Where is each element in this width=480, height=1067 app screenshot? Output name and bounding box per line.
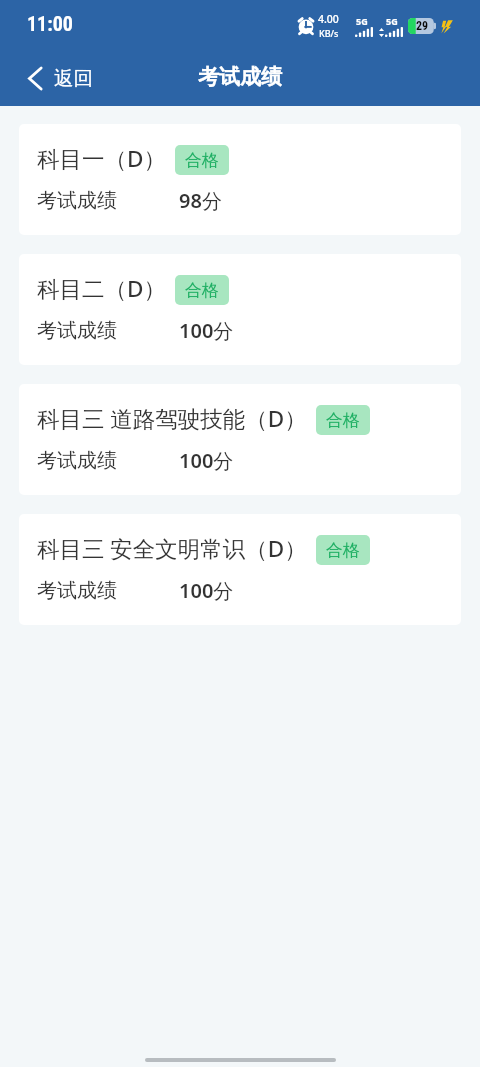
staticText: 返回 [54,66,93,91]
button[interactable]: 科目一（D） [19,124,461,235]
button[interactable]: 科目二（D） [19,254,461,365]
staticText: 考试成绩 [37,188,117,213]
staticText: 合格 [326,410,360,431]
staticText: KB/s [319,27,339,39]
staticText: 11:00 [27,12,73,35]
staticText: 29 [416,19,429,33]
staticText: 100分 [179,317,234,344]
staticText: 100分 [179,577,234,604]
button[interactable]: 返回 [0,55,107,100]
staticText: 科目三 道路驾驶技能（D） [37,403,307,434]
staticText: 合格 [326,540,360,561]
staticText: 科目二（D） [37,273,166,304]
staticText: 科目一（D） [37,143,166,174]
staticText: 4.00 [318,12,339,26]
staticText: 考试成绩 [37,578,117,603]
button[interactable]: 科目三 安全文明常识（D） [19,514,461,625]
staticText: 5G [356,15,368,27]
button[interactable]: 科目三 道路驾驶技能（D） [19,384,461,495]
staticText: 合格 [185,280,219,301]
staticText: 合格 [185,150,219,171]
staticText: 考试成绩 [37,318,117,343]
staticText: 考试成绩 [37,448,117,473]
staticText: 5G [386,15,398,27]
staticText: 考试成绩 [198,64,282,90]
staticText: 98分 [179,187,222,214]
staticText: 100分 [179,447,234,474]
staticText: 科目三 安全文明常识（D） [37,533,307,564]
